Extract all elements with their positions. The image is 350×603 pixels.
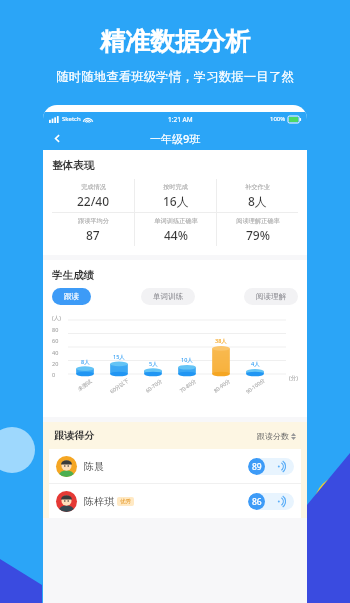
- staticText: 89: [252, 461, 262, 473]
- staticText: 跟读: [64, 292, 79, 301]
- staticText: 70-80分: [178, 377, 197, 394]
- staticText: 80-90分: [212, 377, 231, 394]
- staticText: 单词训练: [153, 292, 183, 301]
- staticText: 8人: [81, 358, 90, 366]
- staticText: 22/40: [77, 193, 110, 209]
- staticText: 优秀: [120, 498, 131, 505]
- staticText: 阅读理解正确率: [236, 217, 280, 225]
- staticText: 未测试: [76, 378, 94, 393]
- staticText: 跟读得分: [54, 429, 94, 442]
- button[interactable]: Play recording: [248, 493, 294, 510]
- staticText: 8人: [248, 193, 267, 209]
- button[interactable]: 跟读分数: [257, 431, 296, 441]
- staticText: (分): [289, 374, 298, 382]
- staticText: 100%: [270, 115, 286, 123]
- staticText: 精准数据分析: [100, 26, 250, 57]
- staticText: 阅读理解: [256, 292, 286, 301]
- staticText: 跟读分数: [257, 431, 289, 441]
- button[interactable]: Play recording: [248, 458, 294, 475]
- staticText: 0: [52, 371, 56, 378]
- staticText: 86: [252, 496, 262, 508]
- staticText: 跟读平均分: [78, 217, 109, 225]
- staticText: 79%: [246, 227, 270, 243]
- staticText: 4人: [251, 360, 260, 368]
- staticText: 44%: [164, 227, 188, 243]
- staticText: 1:21 AM: [168, 115, 193, 124]
- staticText: 5人: [149, 360, 158, 368]
- staticText: 38人: [215, 337, 227, 345]
- staticText: 90-100分: [244, 376, 266, 395]
- staticText: 87: [86, 227, 100, 243]
- staticText: 整体表现: [52, 159, 94, 172]
- button[interactable]: 陈晨: [49, 449, 301, 483]
- staticText: 按时完成: [163, 183, 188, 191]
- button[interactable]: Back: [48, 129, 66, 147]
- staticText: 完成情况: [81, 183, 106, 191]
- staticText: 陈梓琪: [84, 495, 114, 508]
- staticText: 一年级9班: [150, 131, 201, 146]
- staticText: 随时随地查看班级学情，学习数据一目了然: [56, 69, 294, 85]
- staticText: 补交作业: [245, 183, 270, 191]
- staticText: 60: [52, 337, 59, 344]
- staticText: 60分以下: [108, 376, 130, 395]
- staticText: Sketch: [62, 115, 81, 123]
- staticText: 陈晨: [84, 460, 104, 473]
- button[interactable]: 跟读: [52, 288, 91, 305]
- staticText: 40: [52, 349, 59, 356]
- staticText: 15人: [113, 353, 125, 361]
- staticText: 单词训练正确率: [154, 217, 198, 225]
- button[interactable]: 陈梓琪: [49, 484, 301, 518]
- button[interactable]: 单词训练: [141, 288, 195, 305]
- button[interactable]: 阅读理解: [244, 288, 298, 305]
- staticText: 10人: [181, 356, 193, 364]
- staticText: 60-70分: [144, 377, 163, 394]
- staticText: 学生成绩: [52, 269, 94, 282]
- staticText: 80: [52, 326, 59, 333]
- staticText: 20: [52, 360, 59, 367]
- staticText: (人): [52, 314, 61, 322]
- staticText: 16人: [163, 193, 189, 209]
